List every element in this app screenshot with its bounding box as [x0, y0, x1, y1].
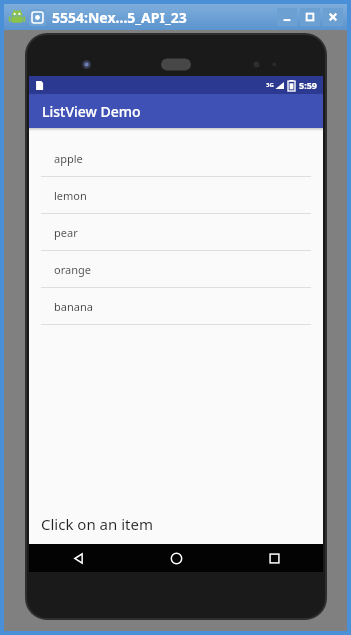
staticText: pear: [54, 225, 78, 240]
button[interactable]: Maximize: [300, 8, 320, 26]
button[interactable]: Recent apps: [225, 544, 323, 572]
button[interactable]: Close: [323, 8, 343, 26]
staticText: apple: [54, 151, 83, 166]
button[interactable]: banana: [29, 288, 323, 325]
staticText: 5554:Nex...5_API_23: [52, 8, 187, 27]
staticText: orange: [54, 262, 91, 277]
button[interactable]: apple: [29, 140, 323, 177]
staticText: Click on an item: [41, 514, 153, 534]
staticText: ListView Demo: [42, 102, 141, 121]
button[interactable]: Back: [29, 544, 127, 572]
button[interactable]: orange: [29, 251, 323, 288]
button[interactable]: Minimize: [277, 8, 297, 26]
button[interactable]: Emulator tab: [29, 9, 46, 26]
button[interactable]: pear: [29, 214, 323, 251]
staticText: 5:59: [299, 79, 317, 91]
staticText: lemon: [54, 188, 87, 203]
staticText: 3G: [266, 81, 274, 89]
staticText: banana: [54, 299, 93, 314]
button[interactable]: lemon: [29, 177, 323, 214]
button[interactable]: Home: [127, 544, 225, 572]
